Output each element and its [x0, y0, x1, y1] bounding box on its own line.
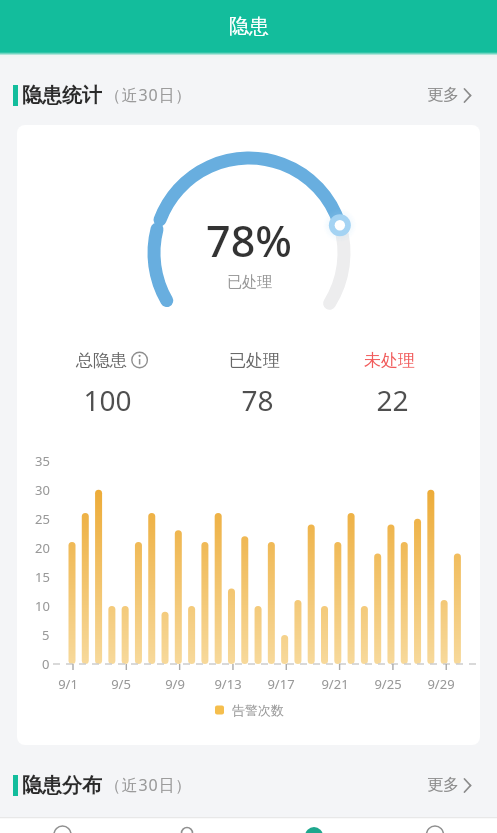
button[interactable] [249, 818, 373, 833]
staticText: 10 [35, 597, 50, 615]
button[interactable]: 更多 [427, 775, 472, 795]
staticText: 未处理 [364, 350, 415, 371]
staticText: 100 [83, 381, 132, 419]
staticText: 9/17 [267, 675, 295, 693]
button[interactable] [0, 818, 125, 833]
staticText: 隐患统计 [22, 83, 102, 108]
staticText: 35 [35, 452, 50, 470]
staticText: 30 [35, 481, 50, 499]
staticText: 隐患 [229, 14, 269, 39]
staticText: 15 [35, 568, 50, 586]
staticText: （近30日） [105, 774, 193, 796]
button[interactable]: 更多 [427, 85, 472, 105]
staticText: 更多 [427, 775, 459, 795]
staticText: 9/9 [165, 675, 185, 693]
staticText: 25 [35, 510, 50, 528]
staticText: （近30日） [105, 84, 193, 106]
staticText: 20 [35, 539, 50, 557]
staticText: 78% [206, 211, 292, 270]
button[interactable] [125, 818, 249, 833]
staticText: 9/21 [321, 675, 349, 693]
staticText: 9/13 [214, 675, 242, 693]
staticText: 9/25 [374, 675, 402, 693]
staticText: 隐患分布 [22, 773, 102, 798]
staticText: 告警次数 [232, 702, 284, 718]
staticText: 总隐患 [76, 350, 127, 371]
staticText: 0 [42, 655, 50, 673]
staticText: 更多 [427, 85, 459, 105]
button[interactable] [373, 818, 497, 833]
staticText: 已处理 [227, 273, 272, 292]
staticText: 9/1 [58, 675, 78, 693]
staticText: 已处理 [229, 350, 280, 371]
staticText: 78 [241, 381, 274, 419]
staticText: 9/29 [427, 675, 455, 693]
staticText: 9/5 [111, 675, 131, 693]
staticText: 5 [42, 626, 50, 644]
staticText: 22 [376, 381, 409, 419]
